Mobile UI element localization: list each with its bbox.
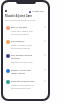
button[interactable]: Verified care (29, 10, 44, 13)
staticText: Knees, shoulders, wrists and morning sti… (11, 44, 32, 50)
button[interactable]: Joint stiffness (3, 39, 48, 53)
staticText: Lower back, sciatica, hips and posture s… (11, 30, 33, 36)
staticText: Recovery and repair care (11, 61, 33, 64)
staticText: Sprains, strains and minor injuries (11, 69, 31, 75)
button[interactable]: Back or hip pain (3, 25, 48, 39)
staticText: Get a personalised plan (11, 80, 35, 83)
staticText: Joint stiffness (11, 40, 25, 43)
button[interactable]: Get a personalised plan (3, 79, 48, 91)
staticText: Back or hip pain (11, 26, 28, 29)
staticText: Muscle & Joint Care (5, 14, 32, 18)
button[interactable]: Post-workout muscle soreness (3, 53, 48, 68)
button[interactable]: Sprains, strains and minor injuries (3, 68, 48, 79)
staticText: Post-workout muscle soreness (11, 54, 33, 60)
staticText: Tell us what's bothering you today (5, 19, 36, 22)
staticText: Verified care (32, 10, 44, 13)
staticText: Answer a few questions to get matched wi… (11, 84, 34, 90)
